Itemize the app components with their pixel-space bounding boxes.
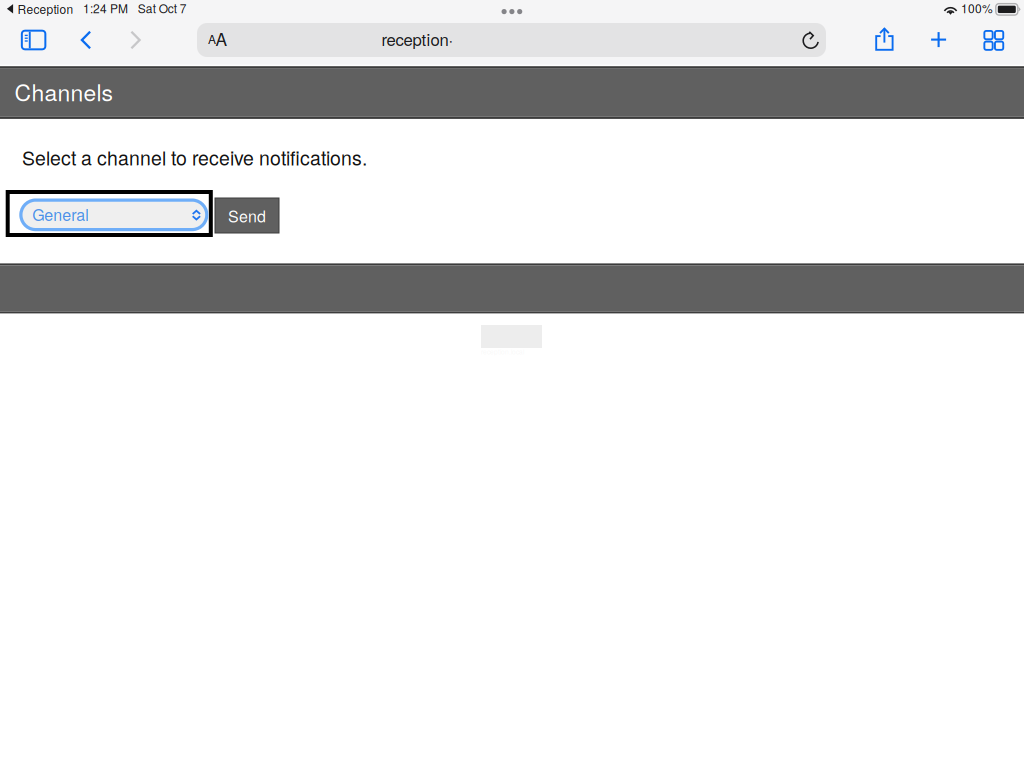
- staticText: General: [32, 202, 89, 225]
- button[interactable]: Share: [861, 20, 907, 58]
- button[interactable]: General: [6, 190, 213, 237]
- button[interactable]: Forward: [113, 23, 157, 57]
- button[interactable]: Show tab overview: [970, 20, 1016, 58]
- button[interactable]: Send: [215, 198, 279, 233]
- staticText: Reception: [17, 0, 73, 17]
- staticText: 100%: [961, 0, 993, 17]
- button[interactable]: A: [197, 23, 826, 57]
- staticText: reception·: [381, 27, 453, 51]
- staticText: Sat Oct 7: [138, 0, 187, 17]
- button[interactable]: Reception: [7, 2, 97, 16]
- staticText: Select a channel to receive notification…: [22, 143, 367, 171]
- staticText: Channels: [14, 75, 112, 108]
- staticText: 1:24 PM: [83, 0, 128, 17]
- staticText: A: [216, 26, 228, 51]
- staticText: Send: [228, 204, 266, 227]
- staticText: A: [208, 30, 216, 47]
- button[interactable]: Back: [64, 23, 108, 57]
- button[interactable]: New tab: [915, 20, 961, 58]
- staticText: reception.local: [481, 347, 524, 356]
- button[interactable]: Show sidebar: [10, 23, 58, 57]
